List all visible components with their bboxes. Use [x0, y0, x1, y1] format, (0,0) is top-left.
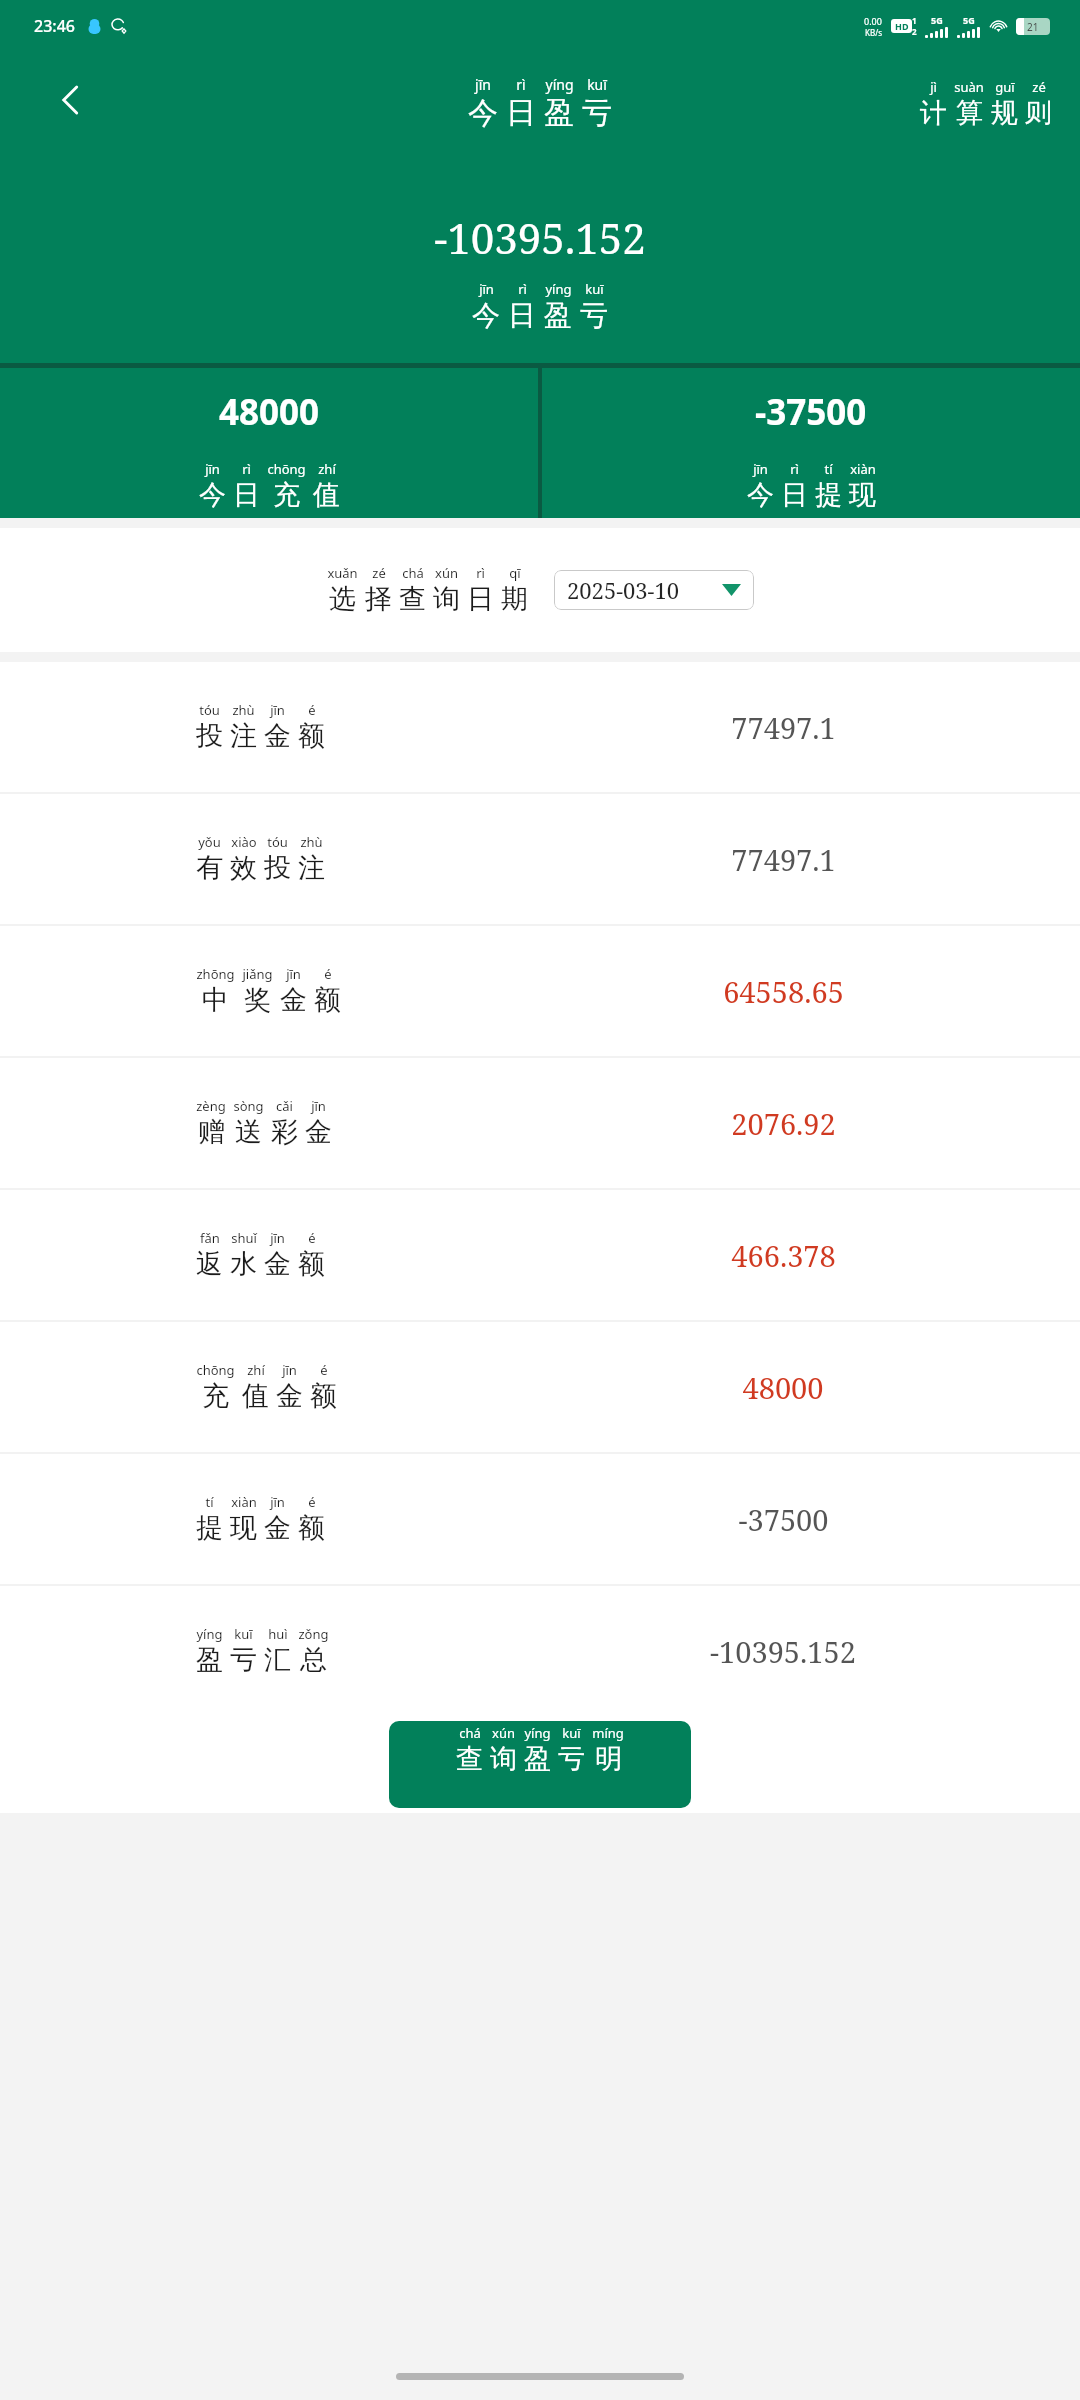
- staticText: jīn: [475, 75, 491, 94]
- button[interactable]: yíng: [0, 1586, 1080, 1716]
- button[interactable]: 48000: [0, 368, 538, 518]
- button[interactable]: yǒu: [0, 794, 1080, 924]
- staticText: 日: [506, 94, 536, 132]
- staticText: 选: [329, 582, 356, 616]
- staticText: 48000: [742, 1368, 824, 1407]
- staticText: 466.378: [731, 1236, 836, 1275]
- staticText: shuǐ: [231, 1229, 257, 1247]
- staticText: xiào: [231, 833, 257, 851]
- staticText: 金: [264, 719, 291, 753]
- staticText: rì: [516, 75, 526, 94]
- staticText: 明: [595, 1742, 622, 1776]
- staticText: 有: [196, 851, 223, 885]
- staticText: 询: [490, 1742, 517, 1776]
- staticText: 注: [230, 719, 257, 753]
- staticText: xún: [492, 1724, 515, 1742]
- staticText: 亏: [558, 1742, 585, 1776]
- staticText: 额: [298, 1247, 325, 1281]
- staticText: zhù: [300, 833, 323, 851]
- staticText: 中: [202, 983, 229, 1017]
- staticText: 注: [298, 851, 325, 885]
- button[interactable]: zhōng: [0, 926, 1080, 1056]
- staticText: 返: [196, 1247, 223, 1281]
- staticText: 查: [399, 582, 426, 616]
- staticText: 2: [912, 26, 917, 37]
- staticText: rì: [518, 280, 527, 298]
- staticText: jiǎng: [242, 965, 273, 983]
- staticText: 金: [264, 1247, 291, 1281]
- staticText: xuǎn: [327, 564, 358, 582]
- staticText: chōng: [196, 1361, 235, 1379]
- staticText: é: [320, 1361, 328, 1379]
- staticText: 23:46: [34, 15, 75, 37]
- button[interactable]: Back: [44, 73, 98, 127]
- staticText: chá: [402, 564, 424, 582]
- staticText: kuī: [234, 1625, 253, 1643]
- staticText: 日: [781, 478, 808, 512]
- staticText: 总: [300, 1643, 327, 1677]
- staticText: 0.00: [864, 15, 882, 27]
- staticText: tóu: [267, 833, 288, 851]
- staticText: cǎi: [276, 1097, 293, 1115]
- staticText: jīn: [753, 460, 768, 478]
- staticText: 额: [314, 983, 341, 1017]
- staticText: 亏: [230, 1643, 257, 1677]
- staticText: xiàn: [850, 460, 876, 478]
- staticText: jīn: [479, 280, 494, 298]
- staticText: jīn: [282, 1361, 297, 1379]
- staticText: 今: [747, 478, 774, 512]
- staticText: 提: [815, 478, 842, 512]
- staticText: zhù: [232, 701, 255, 719]
- staticText: 充: [273, 478, 300, 512]
- staticText: 盈: [544, 298, 572, 333]
- staticText: -10395.152: [0, 209, 1080, 266]
- staticText: yíng: [545, 280, 572, 298]
- button[interactable]: jì: [920, 78, 1052, 130]
- staticText: 日: [467, 582, 494, 616]
- staticText: 投: [196, 719, 223, 753]
- button[interactable]: -37500: [542, 368, 1080, 518]
- button[interactable]: tóu: [0, 662, 1080, 792]
- staticText: yíng: [524, 1724, 551, 1742]
- staticText: 48000: [219, 388, 320, 436]
- staticText: jīn: [270, 701, 285, 719]
- staticText: 投: [264, 851, 291, 885]
- staticText: é: [308, 701, 316, 719]
- staticText: 77497.1: [731, 840, 836, 879]
- staticText: guī: [995, 78, 1015, 96]
- staticText: 奖: [244, 983, 271, 1017]
- button[interactable]: tí: [0, 1454, 1080, 1584]
- button[interactable]: 2025-03-10: [554, 570, 754, 610]
- staticText: zèng: [196, 1097, 226, 1115]
- button[interactable]: zèng: [0, 1058, 1080, 1188]
- staticText: 金: [280, 983, 307, 1017]
- staticText: 询: [433, 582, 460, 616]
- staticText: 亏: [582, 94, 612, 132]
- staticText: 盈: [544, 94, 574, 132]
- staticText: tí: [205, 1493, 214, 1511]
- button[interactable]: chá: [389, 1721, 691, 1808]
- staticText: jīn: [270, 1493, 285, 1511]
- button[interactable]: fǎn: [0, 1190, 1080, 1320]
- staticText: 今: [468, 94, 498, 132]
- staticText: zé: [372, 564, 386, 582]
- button[interactable]: chōng: [0, 1322, 1080, 1452]
- staticText: 值: [242, 1379, 269, 1413]
- staticText: fǎn: [200, 1229, 220, 1247]
- staticText: jīn: [311, 1097, 326, 1115]
- staticText: 汇: [264, 1643, 291, 1677]
- staticText: 2025-03-10: [567, 575, 680, 605]
- staticText: HD: [895, 20, 909, 32]
- staticText: é: [308, 1493, 316, 1511]
- staticText: zhí: [318, 460, 336, 478]
- staticText: 金: [276, 1379, 303, 1413]
- staticText: é: [308, 1229, 316, 1247]
- staticText: 额: [298, 719, 325, 753]
- staticText: 77497.1: [731, 708, 836, 747]
- staticText: zhōng: [196, 965, 235, 983]
- staticText: 效: [230, 851, 257, 885]
- staticText: 金: [305, 1115, 332, 1149]
- staticText: rì: [476, 564, 485, 582]
- staticText: 日: [233, 478, 260, 512]
- staticText: zǒng: [298, 1625, 329, 1643]
